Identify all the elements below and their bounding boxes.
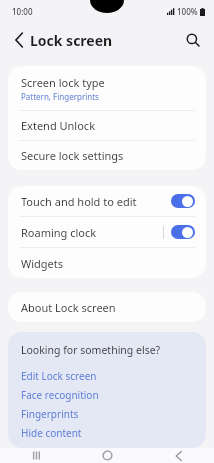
- staticText: Edit Lock screen: [21, 369, 97, 383]
- staticText: Widgets: [21, 256, 64, 271]
- staticText: Secure lock settings: [21, 148, 124, 163]
- staticText: 100%: [177, 6, 198, 17]
- button[interactable]: Secure lock settings: [8, 141, 206, 170]
- staticText: Hide content: [21, 426, 82, 440]
- button[interactable]: Touch and hold to edit: [171, 194, 195, 208]
- button[interactable]: Widgets: [8, 248, 206, 278]
- button[interactable]: Recents: [0, 448, 72, 463]
- staticText: Fingerprints: [21, 407, 79, 421]
- button[interactable]: Roaming clock: [171, 225, 195, 239]
- button[interactable]: Hide content: [21, 423, 193, 442]
- staticText: 10:00: [12, 6, 33, 17]
- button[interactable]: Edit Lock screen: [21, 366, 193, 385]
- staticText: Roaming clock: [21, 225, 163, 240]
- button[interactable]: Fingerprints: [21, 404, 193, 423]
- staticText: Pattern, Fingerprints: [21, 91, 99, 102]
- button[interactable]: Back: [143, 448, 214, 463]
- button[interactable]: Back: [6, 27, 32, 53]
- button[interactable]: Extend Unlock: [8, 111, 206, 140]
- button[interactable]: Face recognition: [21, 385, 193, 404]
- staticText: About Lock screen: [21, 300, 116, 315]
- button[interactable]: About Lock screen: [8, 292, 206, 322]
- button[interactable]: Search: [180, 27, 206, 53]
- staticText: Extend Unlock: [21, 118, 96, 133]
- staticText: Face recognition: [21, 388, 99, 402]
- staticText: Screen lock type: [21, 75, 105, 90]
- staticText: Looking for something else?: [21, 343, 161, 357]
- button[interactable]: Roaming clock: [8, 217, 206, 247]
- button[interactable]: Screen lock type: [8, 66, 206, 110]
- staticText: Lock screen: [30, 31, 113, 50]
- button[interactable]: Touch and hold to edit: [8, 186, 206, 216]
- button[interactable]: Home: [72, 448, 143, 463]
- staticText: Touch and hold to edit: [21, 194, 171, 209]
